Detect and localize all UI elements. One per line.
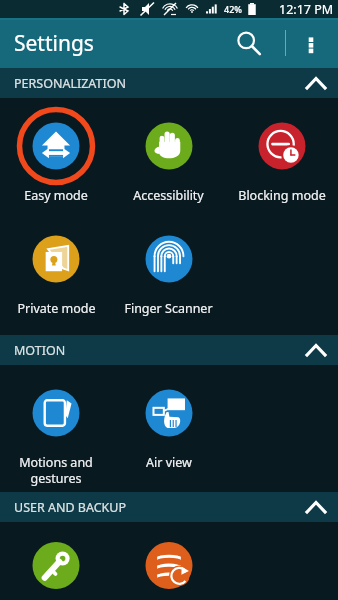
button[interactable]: Finger Scanner [112,220,225,317]
button[interactable]: MOTION [0,335,338,365]
button[interactable]: Search [226,21,270,65]
staticText: Finger Scanner [124,300,213,317]
button[interactable]: Air view [112,374,225,471]
staticText: MOTION [14,342,66,359]
staticText: 42% [224,3,242,15]
button[interactable]: Motions and gestures [0,374,112,486]
button[interactable]: Easy mode [0,107,112,204]
button[interactable]: Blocking mode [225,107,338,204]
staticText: Blocking mode [238,187,326,204]
staticText: Easy mode [24,187,88,204]
button[interactable]: USER AND BACKUP [0,492,338,522]
staticText: Motions and gestures [19,454,93,486]
staticText: Private mode [17,300,96,317]
staticText: 12:17 PM [279,1,334,18]
staticText: PERSONALIZATION [14,75,126,92]
button[interactable]: Backup and reset [112,531,225,600]
staticText: USER AND BACKUP [14,499,127,516]
button[interactable]: Accessibility [112,107,225,204]
button[interactable]: More options [290,22,332,64]
staticText: Accessibility [133,187,204,204]
staticText: Air view [146,454,192,471]
button[interactable]: Accounts [0,531,112,600]
staticText: Settings [14,29,94,58]
button[interactable]: Private mode [0,220,112,317]
button[interactable]: PERSONALIZATION [0,68,338,98]
